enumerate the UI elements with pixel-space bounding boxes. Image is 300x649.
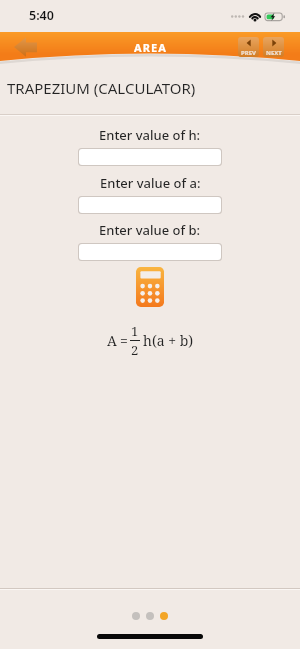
- staticText: PREV: [241, 49, 256, 57]
- staticText: TRAPEZIUM (CALCULATOR): [7, 78, 196, 98]
- staticText: 5:40: [29, 7, 54, 24]
- button[interactable]: NEXT: [263, 37, 284, 57]
- staticText: h(a + b): [143, 331, 194, 350]
- staticText: Enter value of b:: [99, 221, 201, 239]
- staticText: =: [120, 331, 128, 350]
- staticText: 2: [131, 341, 139, 359]
- button[interactable]: PREV: [238, 37, 259, 57]
- staticText: Enter value of h:: [99, 126, 201, 144]
- staticText: Enter value of a:: [100, 174, 201, 192]
- button[interactable]: Back: [14, 37, 37, 57]
- staticText: AREA: [134, 40, 167, 55]
- staticText: NEXT: [266, 49, 282, 57]
- staticText: 1: [131, 322, 139, 340]
- staticText: A: [107, 331, 117, 350]
